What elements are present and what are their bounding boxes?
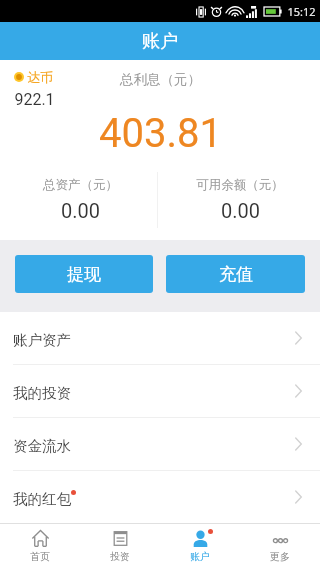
button[interactable]: 投资 bbox=[80, 524, 160, 569]
button[interactable]: 我的红包 bbox=[0, 471, 320, 523]
staticText: 15:12 bbox=[287, 4, 316, 19]
staticText: 我的红包 bbox=[13, 490, 71, 508]
staticText: 总资产（元） bbox=[43, 177, 118, 193]
staticText: 账户 bbox=[190, 550, 210, 563]
staticText: 达币 bbox=[27, 69, 53, 85]
staticText: 更多 bbox=[270, 550, 290, 563]
button[interactable]: 更多 bbox=[240, 524, 320, 569]
staticText: 0.00 bbox=[61, 199, 100, 222]
button[interactable]: 我的投资 bbox=[0, 365, 320, 417]
staticText: 账户 bbox=[142, 30, 178, 53]
staticText: 我的投资 bbox=[13, 384, 71, 402]
button[interactable]: 提现 bbox=[15, 255, 153, 293]
staticText: 0.00 bbox=[221, 199, 260, 222]
staticText: 资金流水 bbox=[13, 437, 71, 455]
button[interactable]: 首页 bbox=[0, 524, 80, 569]
staticText: 提现 bbox=[67, 264, 101, 285]
button[interactable]: 账户资产 bbox=[0, 312, 320, 364]
staticText: 可用余额（元） bbox=[196, 177, 284, 193]
button[interactable]: 账户 bbox=[160, 524, 240, 569]
button[interactable]: 充值 bbox=[166, 255, 305, 293]
staticText: 403.81 bbox=[99, 110, 222, 157]
staticText: 总利息（元） bbox=[120, 71, 201, 88]
staticText: 922.1 bbox=[14, 90, 55, 109]
staticText: 充值 bbox=[219, 264, 253, 285]
staticText: 账户资产 bbox=[13, 331, 71, 349]
staticText: 投资 bbox=[110, 550, 130, 563]
button[interactable]: 资金流水 bbox=[0, 418, 320, 470]
staticText: 首页 bbox=[30, 550, 50, 563]
